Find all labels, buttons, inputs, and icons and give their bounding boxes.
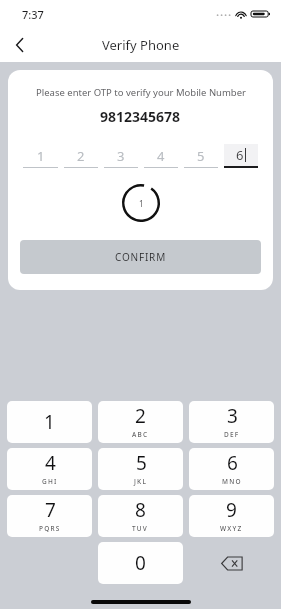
- button[interactable]: 9: [189, 495, 274, 537]
- staticText: 1: [37, 147, 45, 165]
- staticText: 3: [117, 147, 125, 165]
- staticText: 3: [227, 403, 238, 429]
- staticText: DEF: [224, 430, 240, 439]
- staticText: Please enter OTP to verify your Mobile N…: [36, 86, 246, 99]
- staticText: 8: [135, 497, 146, 523]
- button[interactable]: OTP digit 5: [184, 145, 218, 168]
- staticText: 0: [135, 550, 146, 576]
- staticText: JKL: [134, 477, 148, 486]
- staticText: 5: [136, 450, 147, 476]
- button[interactable]: 3: [189, 401, 274, 443]
- button[interactable]: OTP digit 4: [144, 145, 178, 168]
- button[interactable]: OTP digit 1: [23, 145, 58, 168]
- button[interactable]: CONFIRM: [20, 240, 261, 274]
- button[interactable]: 7: [7, 495, 92, 537]
- button[interactable]: OTP digit 3: [104, 145, 138, 168]
- button[interactable]: 1: [7, 401, 92, 443]
- staticText: TUV: [132, 524, 149, 533]
- staticText: 7:37: [22, 7, 44, 22]
- staticText: 2: [77, 147, 85, 165]
- button[interactable]: Backspace: [186, 542, 277, 584]
- staticText: 1: [44, 409, 55, 435]
- button[interactable]: 6: [189, 448, 274, 490]
- button[interactable]: 2: [98, 401, 183, 443]
- button[interactable]: 8: [98, 495, 183, 537]
- staticText: 4: [45, 450, 56, 476]
- staticText: 4: [157, 147, 165, 165]
- staticText: 2: [135, 403, 146, 429]
- staticText: WXYZ: [220, 524, 243, 533]
- button[interactable]: 5: [98, 448, 183, 490]
- button[interactable]: Back: [0, 28, 40, 62]
- staticText: ABC: [132, 430, 149, 439]
- staticText: GHI: [42, 477, 58, 486]
- staticText: 1: [139, 198, 144, 209]
- button[interactable]: OTP digit 2: [64, 145, 98, 168]
- button[interactable]: OTP digit 6: [224, 144, 258, 168]
- staticText: CONFIRM: [115, 250, 166, 264]
- button[interactable]: 0: [98, 542, 183, 584]
- button[interactable]: Resend timer: [122, 184, 160, 222]
- button[interactable]: 4: [7, 448, 92, 490]
- staticText: 9812345678: [100, 107, 181, 126]
- staticText: PQRS: [39, 524, 61, 533]
- staticText: MNO: [222, 477, 242, 486]
- staticText: 7: [45, 497, 56, 523]
- staticText: 9: [226, 497, 237, 523]
- staticText: 5: [197, 147, 205, 165]
- staticText: Verify Phone: [102, 36, 180, 54]
- staticText: 6: [227, 450, 238, 476]
- staticText: 6: [236, 146, 244, 164]
